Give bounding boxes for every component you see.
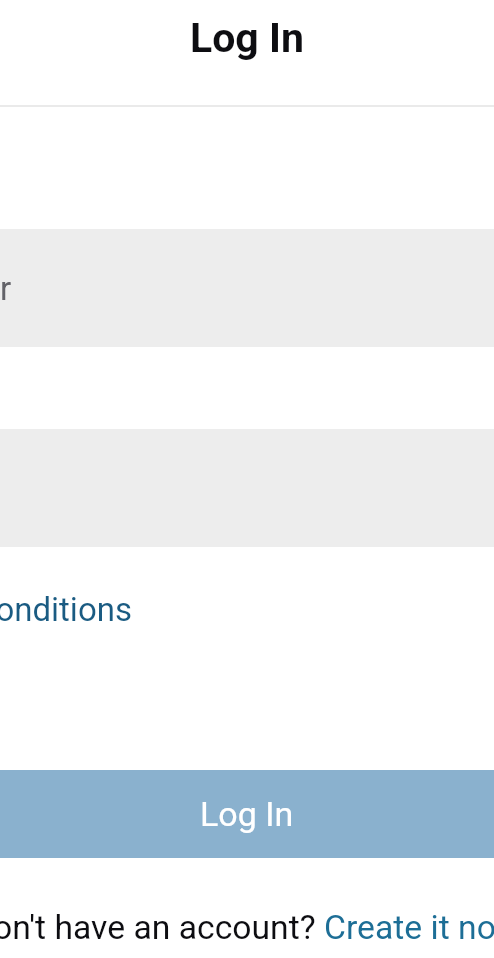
button[interactable]: User <box>0 229 494 347</box>
staticText: Log In <box>200 794 294 834</box>
staticText: Terms and Conditions <box>0 590 132 629</box>
button[interactable]: Log In <box>0 770 494 858</box>
button[interactable]: Create it now <box>324 908 494 947</box>
staticText: User <box>0 269 12 308</box>
staticText: Don't have an account? <box>0 908 324 947</box>
button[interactable]: Terms and Conditions <box>0 590 132 629</box>
staticText: Log In <box>190 14 304 62</box>
